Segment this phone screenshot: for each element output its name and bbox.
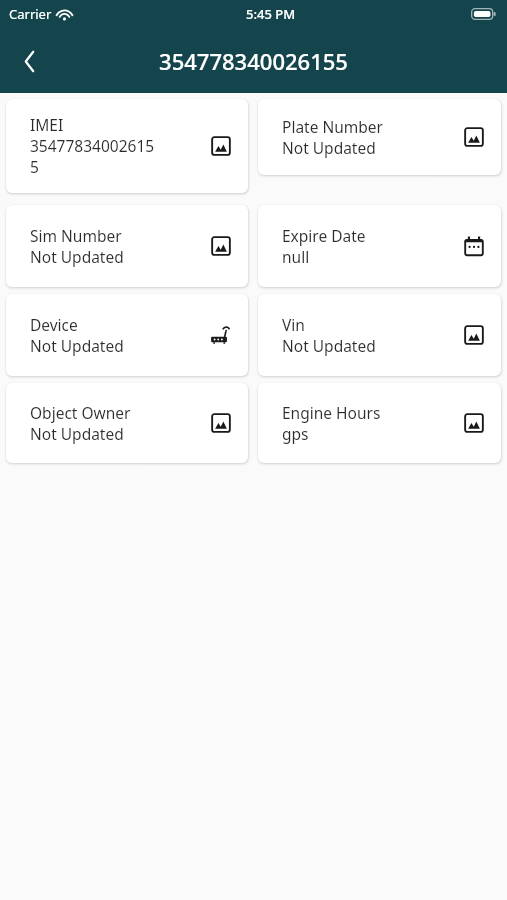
button[interactable]: Object Owner <box>6 383 248 463</box>
staticText: Not Updated <box>30 423 124 444</box>
staticText: Not Updated <box>30 335 124 356</box>
other: Image <box>210 235 232 257</box>
staticText: 35477834002615 5 <box>30 135 155 178</box>
staticText: Vin <box>282 314 305 335</box>
button[interactable]: Plate Number <box>258 99 501 175</box>
other: Image <box>210 412 232 434</box>
staticText: Expire Date <box>282 225 366 246</box>
staticText: Plate Number <box>282 116 383 137</box>
staticText: 5:45 PM <box>246 5 296 23</box>
staticText: 354778340026155 <box>159 46 348 76</box>
staticText: Not Updated <box>30 246 124 267</box>
button[interactable]: Sim Number <box>6 205 248 287</box>
button[interactable]: Expire Date <box>258 205 501 287</box>
staticText: Not Updated <box>282 335 376 356</box>
staticText: Device <box>30 314 78 335</box>
other: Image <box>463 412 485 434</box>
staticText: Not Updated <box>282 137 376 158</box>
button[interactable]: IMEI <box>6 99 248 193</box>
other: Calendar <box>463 235 485 257</box>
button[interactable]: Device <box>6 294 248 376</box>
button[interactable]: Back <box>7 39 51 83</box>
staticText: Engine Hours <box>282 402 381 423</box>
staticText: null <box>282 246 310 267</box>
staticText: IMEI <box>30 114 64 135</box>
staticText: gps <box>282 423 309 444</box>
button[interactable]: Engine Hours <box>258 383 501 463</box>
staticText: Object Owner <box>30 402 131 423</box>
staticText: Sim Number <box>30 225 122 246</box>
other: Image <box>463 126 485 148</box>
other: Device <box>210 324 232 346</box>
staticText: Carrier <box>9 5 52 23</box>
button[interactable]: Vin <box>258 294 501 376</box>
other: Image <box>463 324 485 346</box>
other: Image <box>210 135 232 157</box>
